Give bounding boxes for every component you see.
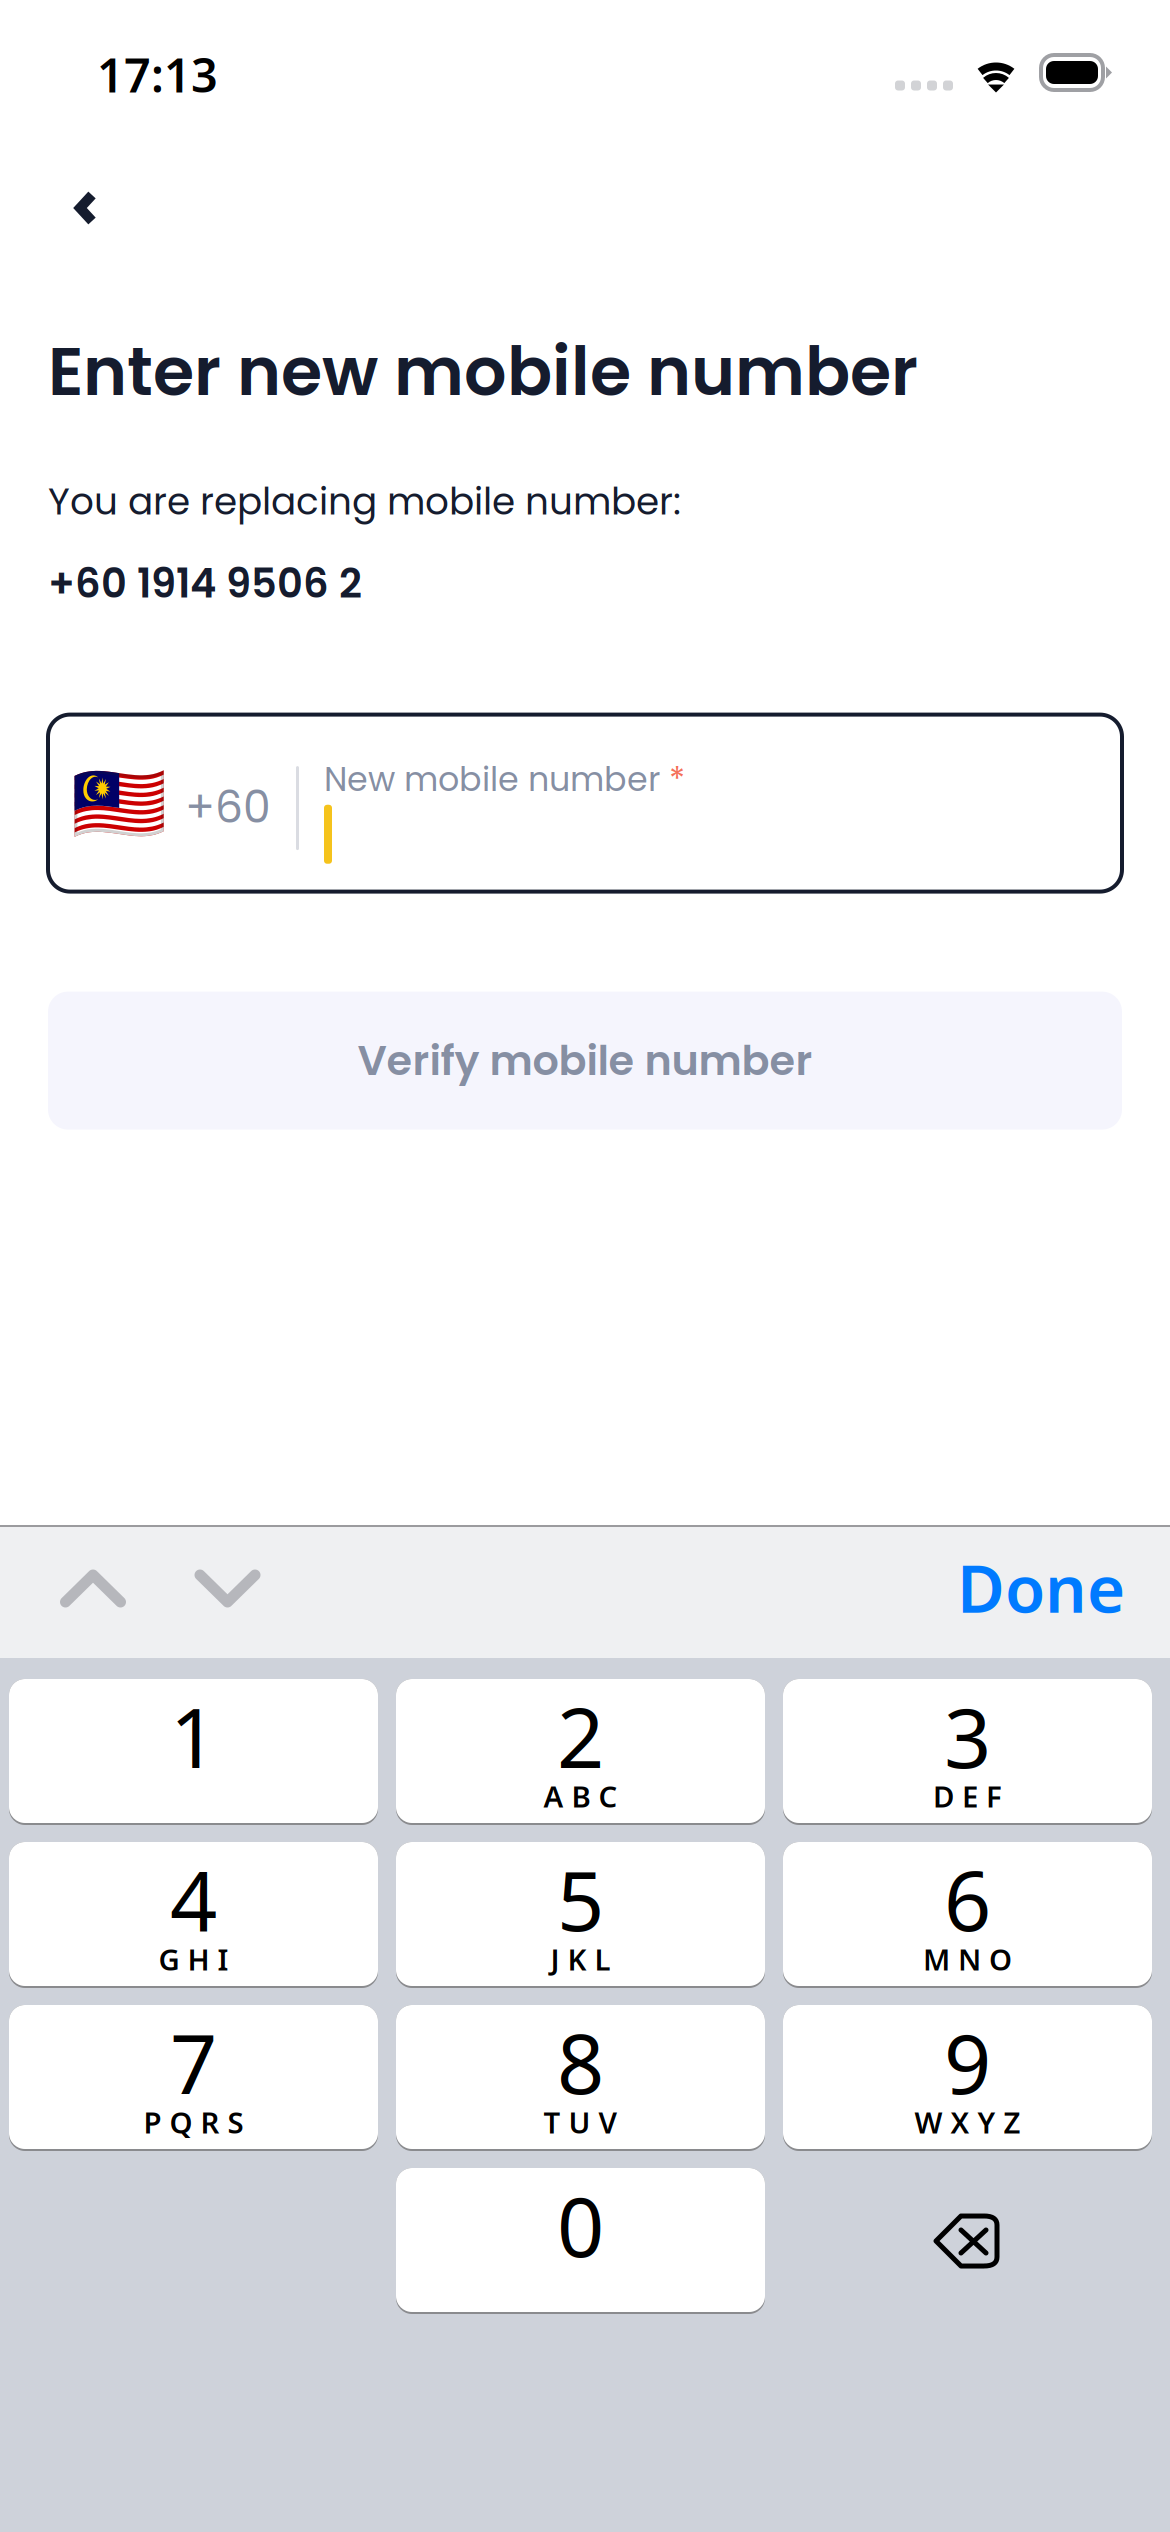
staticText: W X Y Z (914, 2102, 1020, 2141)
staticText: T U V (543, 2102, 617, 2141)
button[interactable]: 5 (396, 1842, 765, 1988)
staticText: P Q R S (143, 2102, 243, 2141)
staticText: Verify mobile number (357, 1032, 812, 1090)
button[interactable]: 4 (9, 1842, 378, 1988)
staticText: Enter new mobile number (48, 325, 918, 418)
staticText: 4 (170, 1844, 217, 1954)
button[interactable]: 8 (396, 2005, 765, 2151)
button[interactable]: 6 (783, 1842, 1152, 1988)
staticText: * (669, 756, 685, 803)
staticText: 7 (170, 2007, 217, 2117)
button[interactable]: 9 (783, 2005, 1152, 2151)
staticText: 5 (557, 1844, 604, 1954)
staticText: A B C (543, 1776, 617, 1815)
button[interactable]: Previous field (0, 1527, 160, 1658)
staticText: +60 1914 9506 2 (48, 556, 362, 612)
button[interactable]: 7 (9, 2005, 378, 2151)
staticText: 6 (944, 1844, 991, 1954)
button[interactable]: 3 (783, 1679, 1152, 1825)
staticText: 0 (557, 2170, 604, 2280)
staticText: You are replacing mobile number: (48, 475, 681, 528)
staticText: D E F (933, 1776, 1002, 1815)
staticText: 8 (557, 2007, 604, 2117)
button[interactable]: 2 (396, 1679, 765, 1825)
staticText: 9 (944, 2007, 991, 2117)
staticText: 2 (557, 1681, 604, 1791)
staticText: 🇲🇾 (71, 759, 167, 847)
staticText: G H I (158, 1939, 228, 1978)
staticText: 17:13 (97, 43, 218, 105)
button[interactable]: Next field (160, 1527, 295, 1658)
button[interactable]: Delete (783, 2168, 1152, 2314)
staticText: M N O (923, 1939, 1012, 1978)
staticText: +60 (185, 776, 271, 838)
staticText: Done (957, 1544, 1125, 1631)
button[interactable]: 0 (396, 2168, 765, 2314)
button[interactable]: Done (907, 1527, 1170, 1658)
staticText: 1 (170, 1681, 217, 1791)
staticText: J K L (550, 1939, 610, 1978)
button[interactable]: Back (0, 144, 157, 246)
button[interactable]: 1 (9, 1679, 378, 1825)
button[interactable]: Verify mobile number (48, 992, 1122, 1130)
staticText: New mobile number (324, 756, 669, 803)
staticText: 3 (944, 1681, 991, 1791)
